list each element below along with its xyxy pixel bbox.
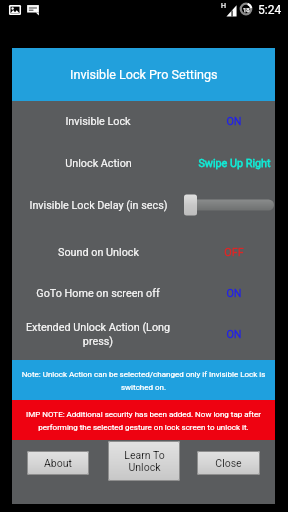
button[interactable]: Sound on Unlock bbox=[12, 242, 275, 263]
button[interactable]: About bbox=[27, 451, 89, 475]
button[interactable]: Invisible Lock bbox=[12, 111, 275, 132]
staticText: Unlock Action bbox=[65, 157, 132, 170]
button[interactable]: Extended Unlock Action (Long press) bbox=[12, 317, 275, 351]
staticText: Invisible Lock Delay (in secs) bbox=[29, 199, 168, 212]
staticText: Swipe Up Right bbox=[198, 157, 271, 170]
staticText: IMP NOTE: Additional security has been a… bbox=[18, 410, 269, 431]
staticText: 18 bbox=[243, 6, 250, 13]
staticText: Extended Unlock Action (Long press) bbox=[12, 321, 184, 347]
staticText: ON bbox=[226, 115, 242, 128]
other: Battery bbox=[240, 3, 252, 15]
staticText: 5:24 bbox=[258, 3, 282, 17]
button[interactable]: Learn To Unlock bbox=[108, 441, 180, 481]
other: Signal strength bbox=[226, 4, 237, 17]
button[interactable]: Delay slider bbox=[184, 194, 275, 216]
staticText: Learn To Unlock bbox=[124, 449, 165, 474]
staticText: Invisible Lock bbox=[65, 115, 131, 128]
staticText: ON bbox=[226, 287, 242, 300]
button[interactable]: Invisible Lock Pro Settings bbox=[12, 48, 275, 101]
staticText: Invisible Lock Pro Settings bbox=[70, 67, 218, 82]
staticText: ON bbox=[226, 328, 242, 341]
button[interactable]: Unlock Action bbox=[12, 153, 275, 174]
staticText: H bbox=[221, 2, 226, 10]
staticText: OFF bbox=[224, 246, 244, 259]
staticText: Note: Unlock Action can be selected/chan… bbox=[21, 370, 266, 391]
staticText: About bbox=[44, 457, 72, 469]
staticText: Close bbox=[215, 457, 242, 469]
button[interactable]: Close bbox=[197, 451, 260, 475]
button[interactable]: Invisible Lock Delay (in secs) bbox=[12, 194, 275, 216]
other: Screenshot bbox=[8, 4, 22, 16]
button[interactable]: GoTo Home on screen off bbox=[12, 283, 275, 304]
staticText: Sound on Unlock bbox=[58, 246, 139, 259]
staticText: GoTo Home on screen off bbox=[36, 287, 160, 300]
other: Message bbox=[26, 4, 40, 16]
